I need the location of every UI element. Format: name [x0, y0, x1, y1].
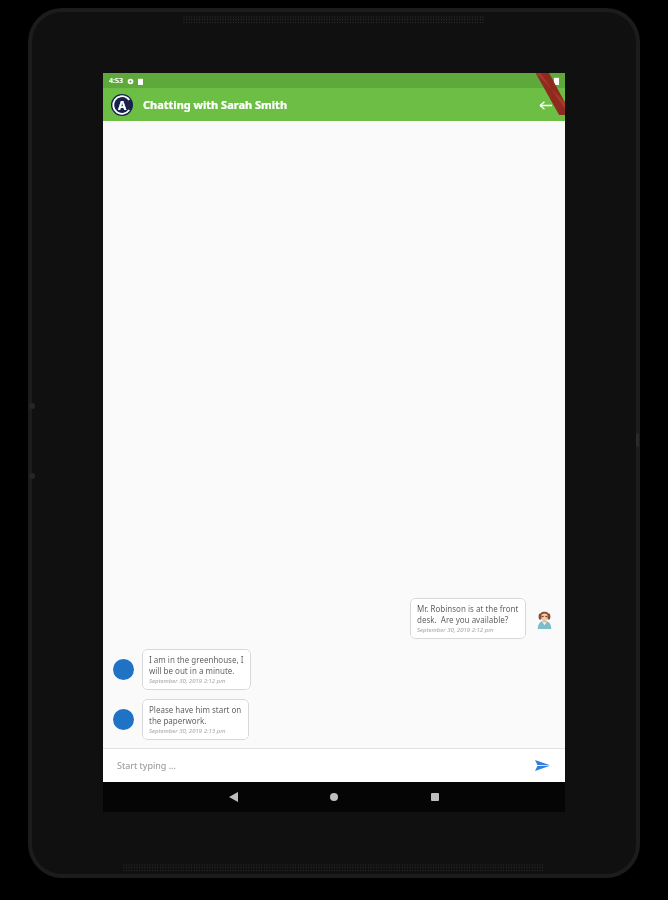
button[interactable]: Send [529, 752, 555, 778]
button[interactable]: Home [321, 784, 347, 810]
button[interactable]: Recent apps [422, 784, 448, 810]
staticText: 4:53 [109, 76, 123, 86]
staticText: September 30, 2019 2:12 pm [149, 677, 226, 685]
staticText: A [118, 97, 127, 113]
staticText: will be out in a minute. [149, 665, 235, 676]
button[interactable]: Start typing ... [117, 748, 529, 782]
button[interactable]: App logo [111, 94, 133, 116]
staticText: desk. Are you available? [417, 614, 509, 625]
other: Contact avatar [113, 709, 134, 730]
staticText: Chatting with Sarah Smith [143, 97, 533, 112]
staticText: Mr. Robinson is at the front [417, 603, 519, 614]
staticText: September 30, 2019 2:13 pm [149, 727, 226, 735]
staticText: I am in the greenhouse, I [149, 654, 244, 665]
staticText: September 30, 2019 2:12 pm [417, 626, 494, 634]
button[interactable]: Mr. Robinson is at the front [113, 598, 555, 639]
button[interactable]: Back [533, 93, 557, 117]
button[interactable]: Contact avatar [113, 699, 555, 740]
other: Contact avatar [113, 659, 134, 680]
staticText: Please have him start on [149, 704, 242, 715]
staticText: Start typing ... [117, 759, 176, 771]
button[interactable]: Back [220, 784, 246, 810]
button[interactable]: Contact avatar [113, 649, 555, 690]
other: Sarah Smith avatar [534, 608, 555, 629]
staticText: the paperwork. [149, 715, 207, 726]
